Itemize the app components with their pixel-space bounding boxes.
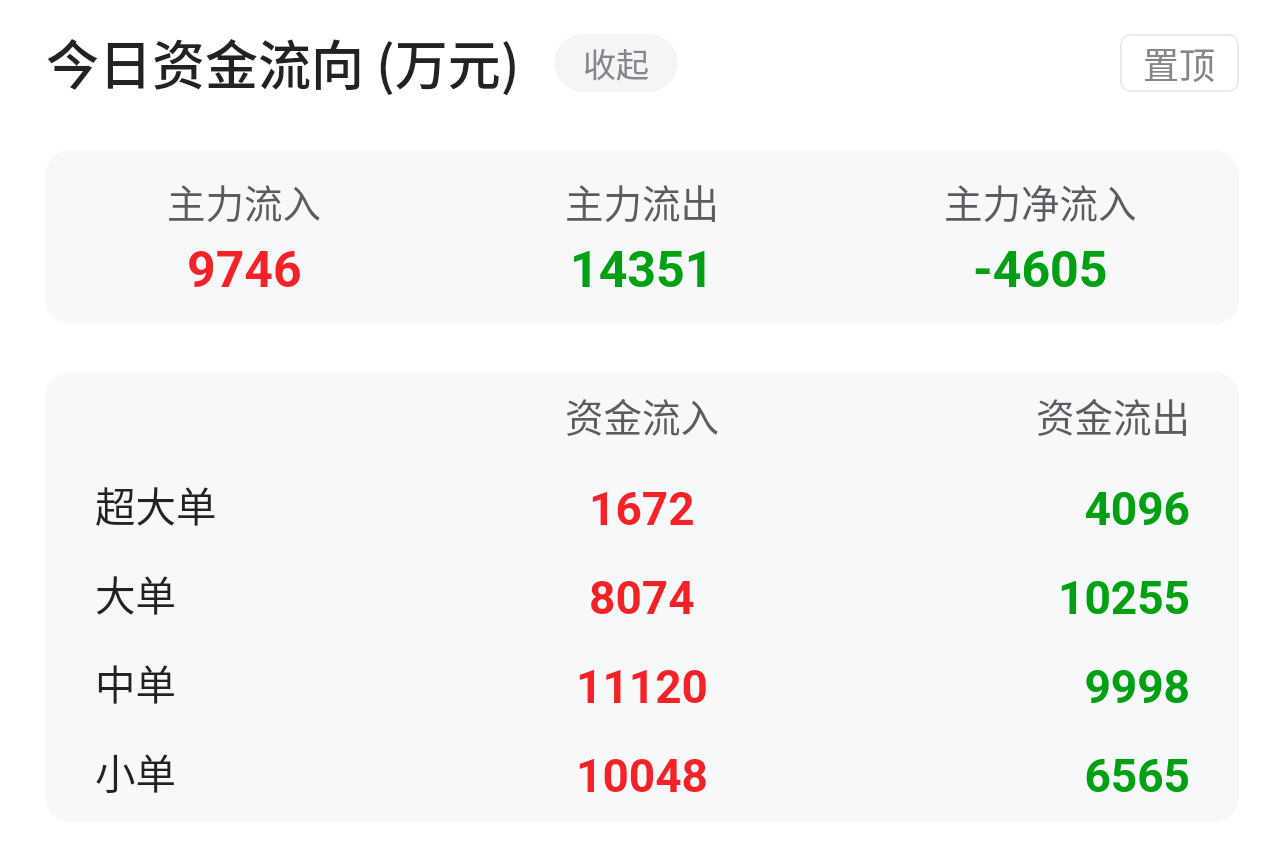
button[interactable]: 主力流出 (443, 150, 841, 324)
staticText: 超大单 (95, 475, 217, 534)
button[interactable]: 中单 (45, 638, 1239, 727)
staticText: -4605 (973, 241, 1108, 300)
button[interactable]: 资金流入 (45, 372, 1239, 460)
staticText: 10255 (1058, 571, 1190, 625)
staticText: 大单 (95, 564, 176, 623)
staticText: 4096 (1084, 482, 1190, 536)
staticText: 1672 (589, 482, 695, 536)
button[interactable]: 主力净流入 (841, 150, 1239, 324)
staticText: 11120 (576, 660, 708, 714)
staticText: 中单 (95, 653, 176, 712)
staticText: 9746 (187, 241, 302, 300)
staticText: 小单 (95, 742, 176, 801)
staticText: 6565 (1084, 749, 1190, 803)
staticText: 主力流入 (167, 173, 322, 229)
button[interactable]: 主力流入 (45, 150, 443, 324)
staticText: 8074 (589, 571, 695, 625)
button[interactable]: 大单 (45, 549, 1239, 638)
button[interactable]: 超大单 (45, 460, 1239, 549)
staticText: 置顶 (1143, 37, 1216, 89)
button[interactable]: 置顶 (1120, 34, 1239, 92)
staticText: 主力流出 (565, 173, 720, 229)
button[interactable]: 收起 (554, 34, 678, 92)
staticText: 今日资金流向 (万元) (46, 24, 520, 101)
staticText: 10048 (576, 749, 708, 803)
staticText: 14351 (570, 241, 714, 300)
staticText: 资金流出 (1035, 387, 1190, 443)
staticText: 主力净流入 (944, 173, 1137, 229)
button[interactable]: 小单 (45, 727, 1239, 816)
staticText: 9998 (1084, 660, 1190, 714)
staticText: 资金流入 (565, 387, 720, 443)
staticText: 收起 (583, 39, 649, 87)
